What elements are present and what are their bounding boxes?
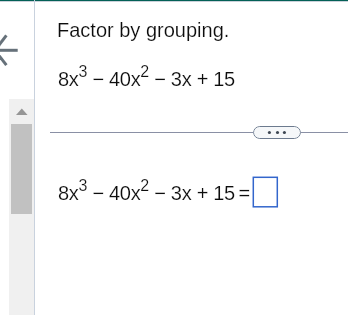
staticText: 8x3 − 40x2 − 3x + 15 = — [58, 177, 250, 204]
button[interactable]: Answer input — [252, 176, 278, 208]
button[interactable]: More options — [253, 126, 301, 139]
staticText: Factor by grouping. — [57, 19, 230, 41]
button[interactable]: Scroll up — [9, 99, 34, 124]
staticText: 8x3 − 40x2 − 3x + 15 — [58, 63, 235, 90]
button[interactable]: Back — [0, 32, 26, 68]
